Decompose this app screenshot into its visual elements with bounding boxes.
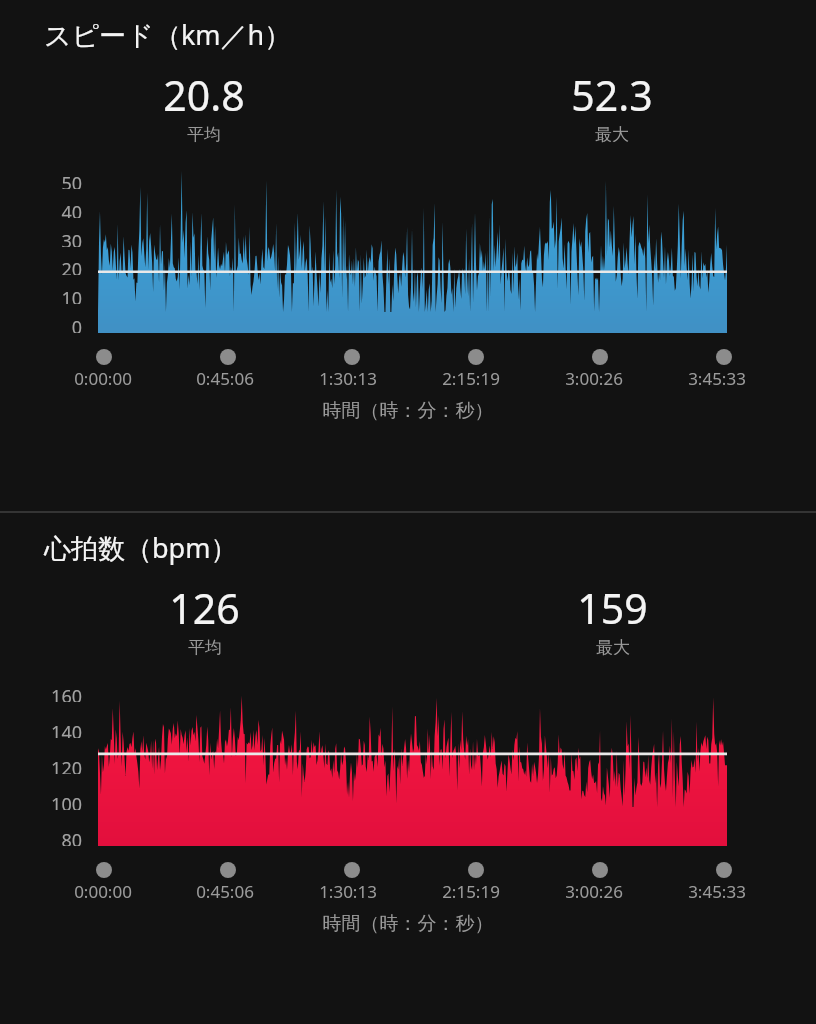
- staticText: 2:15:19: [442, 880, 500, 903]
- staticText: 159: [577, 580, 648, 636]
- staticText: 52.3: [571, 67, 653, 123]
- staticText: 30: [61, 229, 82, 247]
- staticText: 20: [61, 257, 82, 275]
- button[interactable]: 心拍数（bpm）: [0, 513, 816, 1024]
- staticText: 140: [51, 720, 82, 738]
- staticText: 最大: [595, 124, 629, 145]
- staticText: 80: [61, 828, 82, 846]
- staticText: 時間（時：分：秒）: [0, 912, 816, 936]
- staticText: スピード（km／h）: [44, 16, 292, 53]
- staticText: 心拍数（bpm）: [44, 529, 238, 566]
- staticText: 3:45:33: [688, 880, 746, 903]
- staticText: 平均: [187, 124, 221, 145]
- staticText: 2:15:19: [442, 367, 500, 390]
- staticText: 時間（時：分：秒）: [0, 399, 816, 423]
- staticText: 0:00:00: [74, 880, 132, 903]
- staticText: 1:30:13: [319, 880, 377, 903]
- staticText: 160: [51, 684, 82, 702]
- staticText: 0:45:06: [196, 880, 254, 903]
- staticText: 126: [169, 580, 240, 636]
- staticText: 最大: [596, 637, 630, 658]
- staticText: 3:00:26: [565, 880, 623, 903]
- staticText: 100: [51, 792, 82, 810]
- staticText: 120: [51, 756, 82, 774]
- staticText: 40: [61, 200, 82, 218]
- staticText: 1:30:13: [319, 367, 377, 390]
- staticText: 0: [71, 315, 82, 333]
- staticText: 0:00:00: [74, 367, 132, 390]
- staticText: 20.8: [163, 67, 245, 123]
- staticText: 平均: [188, 637, 222, 658]
- staticText: 50: [61, 171, 82, 189]
- staticText: 10: [61, 286, 82, 304]
- button[interactable]: スピード（km／h）: [0, 0, 816, 511]
- staticText: 3:45:33: [688, 367, 746, 390]
- staticText: 0:45:06: [196, 367, 254, 390]
- staticText: 3:00:26: [565, 367, 623, 390]
